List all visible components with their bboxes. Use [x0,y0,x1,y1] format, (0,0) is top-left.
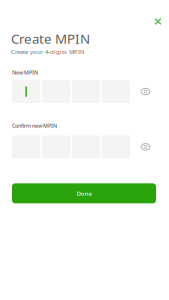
button[interactable]: Close [150,13,166,29]
staticText: Done [76,189,91,197]
staticText: Confirm new MPIN [12,122,57,129]
button[interactable]: Done [12,183,156,203]
button[interactable]: Show confirm MPIN [137,135,153,158]
staticText: Create your 4-digits MPIN [11,48,85,56]
button[interactable]: Show new MPIN [137,80,153,103]
staticText: New MPIN [12,69,38,76]
staticText: Create MPIN [11,29,90,48]
